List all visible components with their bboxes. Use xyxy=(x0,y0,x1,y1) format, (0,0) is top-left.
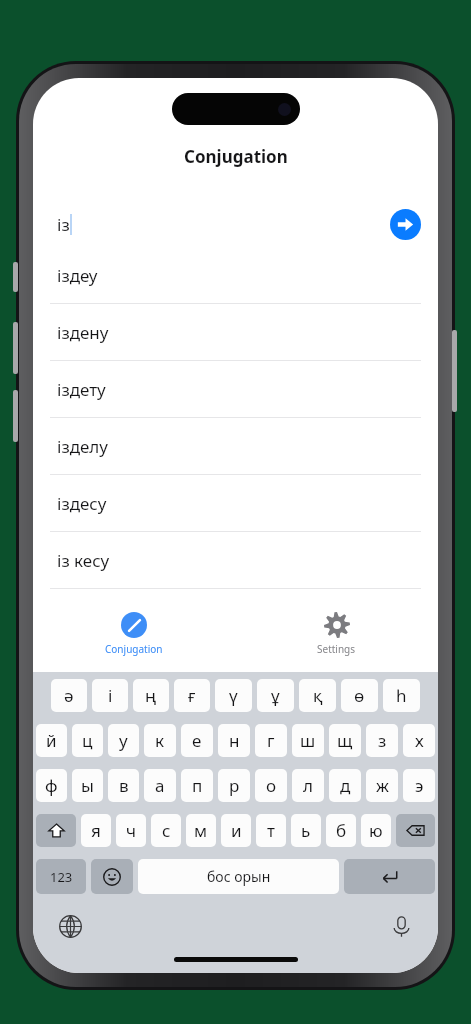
staticText: із кесу xyxy=(57,549,110,572)
staticText: ү xyxy=(229,684,238,707)
staticText: а xyxy=(155,774,165,797)
button[interactable]: Backspace xyxy=(396,814,435,847)
staticText: у xyxy=(119,729,128,752)
button[interactable]: ғ xyxy=(174,679,210,712)
button[interactable]: р xyxy=(218,769,250,802)
button[interactable]: я xyxy=(81,814,111,847)
button[interactable]: а xyxy=(144,769,176,802)
button[interactable]: ш xyxy=(292,724,324,757)
staticText: к xyxy=(155,729,165,752)
button[interactable]: з xyxy=(366,724,398,757)
staticText: бос орын xyxy=(207,867,271,886)
staticText: ө xyxy=(354,684,365,707)
button[interactable]: щ xyxy=(329,724,361,757)
button[interactable]: іздену xyxy=(33,304,438,361)
button[interactable]: іздету xyxy=(33,361,438,418)
button[interactable]: г xyxy=(255,724,287,757)
button[interactable]: Return xyxy=(344,859,435,894)
button[interactable]: ң xyxy=(133,679,169,712)
staticText: г xyxy=(267,729,275,752)
button[interactable]: із кесу xyxy=(33,532,438,589)
button[interactable]: іздесу xyxy=(33,475,438,532)
staticText: л xyxy=(303,774,313,797)
button[interactable]: ө xyxy=(341,679,378,712)
staticText: з xyxy=(378,729,387,752)
button[interactable]: ч xyxy=(116,814,146,847)
button[interactable]: Shift xyxy=(36,814,76,847)
staticText: й xyxy=(46,729,57,752)
staticText: и xyxy=(231,819,242,842)
button[interactable]: о xyxy=(255,769,287,802)
button[interactable]: ізделу xyxy=(33,418,438,475)
button[interactable]: іздеу xyxy=(33,247,438,304)
staticText: р xyxy=(229,774,240,797)
button[interactable]: ү xyxy=(215,679,252,712)
button[interactable]: п xyxy=(181,769,213,802)
staticText: с xyxy=(162,819,171,842)
staticText: Settings xyxy=(317,642,356,656)
button[interactable]: ф xyxy=(36,769,67,802)
staticText: д xyxy=(340,774,351,797)
button[interactable]: х xyxy=(403,724,435,757)
button[interactable]: б xyxy=(326,814,356,847)
staticText: ь xyxy=(301,819,311,842)
button[interactable]: и xyxy=(221,814,251,847)
button[interactable]: у xyxy=(108,724,139,757)
button[interactable]: Settings xyxy=(235,599,438,671)
staticText: ізделу xyxy=(57,435,108,458)
button[interactable]: Emoji xyxy=(91,859,133,894)
staticText: Conjugation xyxy=(184,145,288,168)
staticText: п xyxy=(192,774,203,797)
staticText: х xyxy=(415,729,424,752)
staticText: е xyxy=(192,729,202,752)
button[interactable]: н xyxy=(218,724,250,757)
button[interactable]: ю xyxy=(361,814,391,847)
button[interactable]: ұ xyxy=(257,679,294,712)
button[interactable]: э xyxy=(403,769,435,802)
button[interactable]: й xyxy=(36,724,67,757)
staticText: в xyxy=(119,774,129,797)
button[interactable]: м xyxy=(186,814,216,847)
staticText: я xyxy=(91,819,101,842)
button[interactable]: Next keyboard xyxy=(55,911,85,941)
staticText: ң xyxy=(145,684,157,707)
button[interactable]: в xyxy=(108,769,139,802)
staticText: т xyxy=(267,819,275,842)
button[interactable]: Dictation xyxy=(386,911,416,941)
button[interactable]: д xyxy=(329,769,361,802)
staticText: һ xyxy=(396,684,407,707)
staticText: іздену xyxy=(57,321,109,344)
button[interactable]: т xyxy=(256,814,286,847)
staticText: щ xyxy=(337,729,353,752)
staticText: ғ xyxy=(188,684,196,707)
button[interactable]: е xyxy=(181,724,213,757)
staticText: б xyxy=(336,819,347,842)
staticText: ә xyxy=(64,684,74,707)
staticText: ц xyxy=(82,729,93,752)
button[interactable]: ь xyxy=(291,814,321,847)
button[interactable]: к xyxy=(144,724,176,757)
button[interactable]: ы xyxy=(72,769,103,802)
button[interactable]: ә xyxy=(51,679,87,712)
staticText: Conjugation xyxy=(105,642,163,656)
button[interactable]: і xyxy=(92,679,128,712)
staticText: ұ xyxy=(271,684,280,707)
staticText: ч xyxy=(126,819,137,842)
button[interactable]: із xyxy=(33,201,438,247)
button[interactable]: ж xyxy=(366,769,398,802)
button[interactable]: қ xyxy=(299,679,336,712)
button[interactable]: Conjugate xyxy=(390,209,421,240)
button[interactable]: һ xyxy=(383,679,420,712)
staticText: іздету xyxy=(57,378,106,401)
button[interactable]: л xyxy=(292,769,324,802)
button[interactable]: Conjugation xyxy=(33,599,235,671)
staticText: ф xyxy=(45,774,58,797)
button[interactable]: 123 xyxy=(36,859,86,894)
button[interactable]: ц xyxy=(72,724,103,757)
staticText: ш xyxy=(300,729,316,752)
button[interactable]: с xyxy=(151,814,181,847)
staticText: н xyxy=(229,729,240,752)
button[interactable]: бос орын xyxy=(138,859,339,894)
staticText: м xyxy=(194,819,208,842)
staticText: із xyxy=(57,213,70,236)
